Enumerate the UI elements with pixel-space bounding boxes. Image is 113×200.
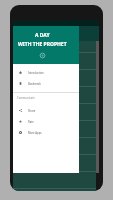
button[interactable] xyxy=(13,70,96,86)
button[interactable] xyxy=(13,155,96,171)
staticText: More Apps xyxy=(28,131,42,135)
button[interactable] xyxy=(13,53,96,69)
button[interactable] xyxy=(13,172,96,188)
staticText: WITH THE PROPHET xyxy=(18,41,67,48)
button[interactable]: Share xyxy=(13,105,79,116)
button[interactable]: Introduction xyxy=(13,67,79,78)
staticText: Communicate xyxy=(17,96,35,100)
staticText: Bookmark xyxy=(28,82,41,86)
button[interactable] xyxy=(13,121,96,137)
button[interactable] xyxy=(13,41,96,52)
staticText: A DAY xyxy=(35,32,50,39)
button[interactable]: Bookmark xyxy=(13,78,79,89)
button[interactable]: Rate xyxy=(13,116,79,127)
button[interactable]: More Apps xyxy=(13,127,79,138)
button[interactable] xyxy=(13,138,96,154)
button[interactable] xyxy=(13,189,96,191)
staticText: Share xyxy=(28,109,36,113)
staticText: Rate xyxy=(28,120,34,124)
button[interactable] xyxy=(13,104,96,120)
button[interactable] xyxy=(13,87,96,103)
staticText: Introduction xyxy=(28,71,44,75)
